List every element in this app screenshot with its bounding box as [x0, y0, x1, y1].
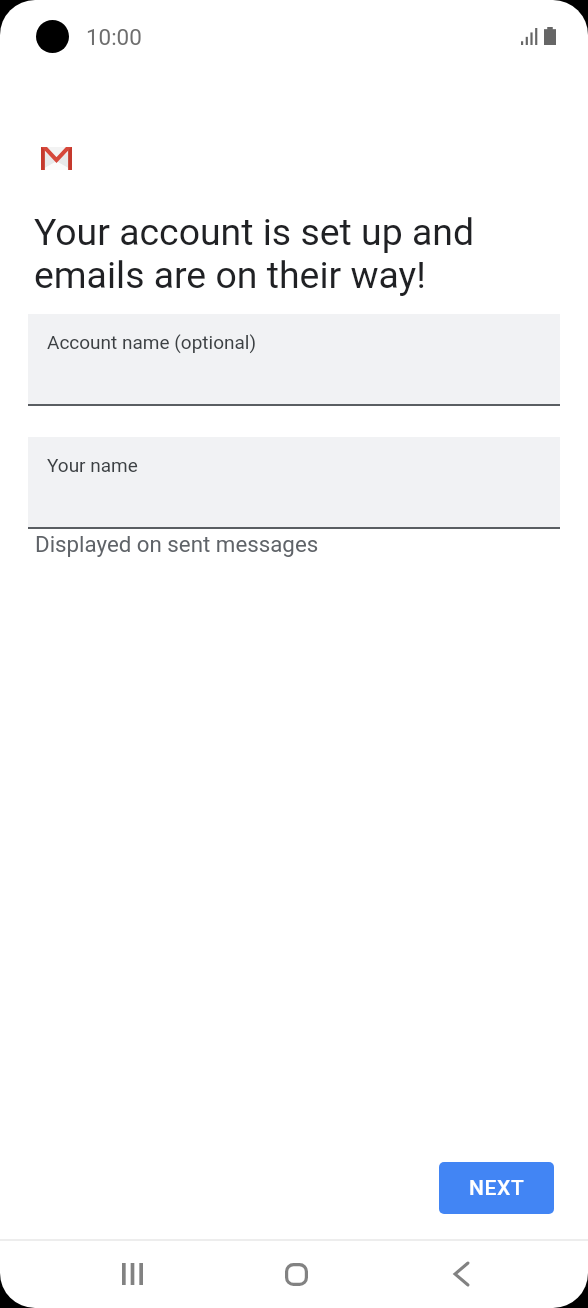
button[interactable]: Recent apps — [96, 1244, 168, 1304]
button[interactable]: NEXT — [439, 1162, 554, 1214]
button[interactable]: Back — [425, 1244, 497, 1304]
staticText: Your account is set up and emails are on… — [34, 210, 500, 298]
staticText: Your name — [47, 454, 138, 476]
button[interactable]: Home — [260, 1244, 332, 1304]
staticText: 10:00 — [86, 24, 142, 50]
staticText: NEXT — [469, 1176, 525, 1201]
staticText: Displayed on sent messages — [35, 531, 319, 557]
staticText: Account name (optional) — [47, 331, 257, 353]
button[interactable]: Your name — [28, 437, 560, 529]
button[interactable]: Account name (optional) — [28, 314, 560, 406]
